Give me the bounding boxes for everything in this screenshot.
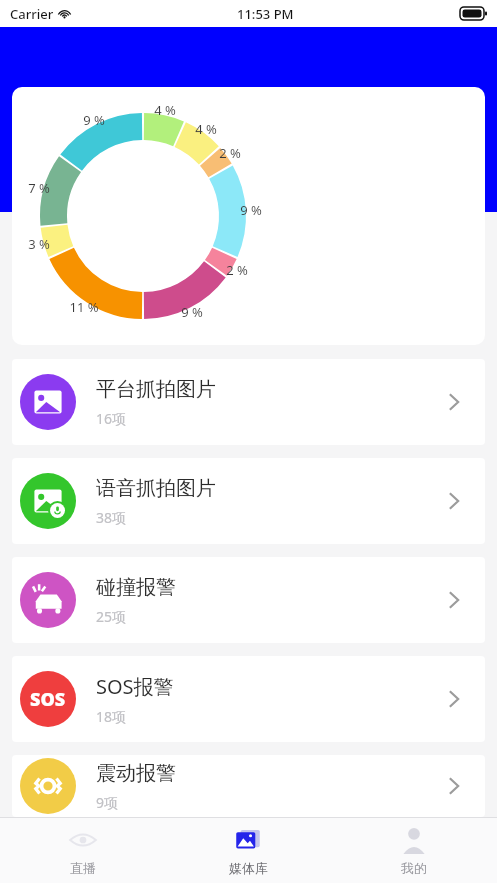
staticText: 11 % [66, 298, 102, 316]
button[interactable]: 媒体库 [165, 818, 331, 883]
staticText: 3 % [21, 235, 57, 253]
staticText: SOS [30, 687, 66, 712]
button[interactable]: 碰撞报警 [12, 557, 485, 643]
staticText: 4 % [147, 101, 183, 119]
staticText: 9项 [96, 793, 119, 812]
button[interactable]: 震动报警 [12, 755, 485, 817]
staticText: 4 % [188, 120, 224, 138]
staticText: 9 % [233, 201, 269, 219]
staticText: 25项 [96, 607, 127, 626]
staticText: 直播 [70, 860, 96, 876]
staticText: 我的 [401, 860, 427, 876]
staticText: 11:53 PM [237, 5, 294, 23]
staticText: 18项 [96, 707, 127, 726]
button[interactable]: SOS [12, 656, 485, 742]
staticText: 2 % [219, 261, 255, 279]
staticText: 7 % [21, 179, 57, 197]
staticText: 平台抓拍图片 [96, 377, 216, 402]
button[interactable]: 平台抓拍图片 [12, 359, 485, 445]
button[interactable]: 我的 [331, 818, 497, 883]
button[interactable]: 语音抓拍图片 [12, 458, 485, 544]
staticText: 9 % [76, 111, 112, 129]
staticText: 16项 [96, 409, 127, 428]
staticText: 38项 [96, 508, 127, 527]
staticText: 9 % [174, 303, 210, 321]
staticText: 语音抓拍图片 [96, 476, 216, 501]
staticText: 碰撞报警 [96, 575, 176, 600]
staticText: SOS报警 [96, 673, 174, 700]
staticText: 震动报警 [96, 761, 176, 786]
staticText: 2 % [212, 144, 248, 162]
staticText: 媒体库 [229, 860, 268, 876]
button[interactable]: 直播 [0, 818, 165, 883]
staticText: Carrier [10, 5, 54, 23]
